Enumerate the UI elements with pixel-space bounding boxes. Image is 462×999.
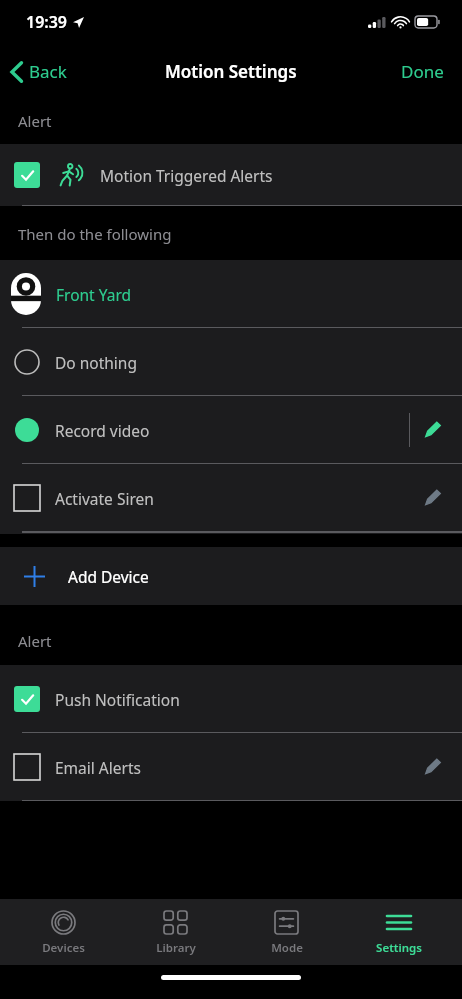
button[interactable]: Edit Activate Siren <box>410 476 454 520</box>
button[interactable]: Back <box>10 60 67 83</box>
button[interactable]: Activate Siren <box>0 464 462 532</box>
staticText: Mode <box>271 940 303 956</box>
button[interactable]: Mode <box>239 899 334 965</box>
button[interactable]: Add Device <box>0 547 462 605</box>
staticText: Library <box>156 940 196 956</box>
button[interactable]: Done <box>401 60 462 83</box>
button[interactable]: Push Notification <box>0 665 462 733</box>
staticText: Motion Triggered Alerts <box>100 165 273 186</box>
button[interactable]: Devices <box>16 899 111 965</box>
button[interactable]: Settings <box>351 899 446 965</box>
staticText: Devices <box>42 940 85 956</box>
button[interactable]: Do nothing <box>0 328 462 396</box>
staticText: Motion Settings <box>165 60 297 83</box>
staticText: Then do the following <box>18 224 172 244</box>
staticText: Back <box>29 60 67 83</box>
staticText: Add Device <box>68 566 149 587</box>
button[interactable]: Library <box>128 899 223 965</box>
button[interactable]: Record video <box>0 396 462 464</box>
staticText: Settings <box>376 940 422 956</box>
staticText: Record video <box>55 420 150 441</box>
button[interactable]: Email Alerts <box>0 733 462 801</box>
staticText: Alert <box>18 111 52 131</box>
staticText: Alert <box>18 631 52 651</box>
staticText: Front Yard <box>56 284 132 305</box>
button[interactable]: Edit Record video <box>410 408 454 452</box>
staticText: Activate Siren <box>55 488 154 509</box>
button[interactable]: Edit Email Alerts <box>410 745 454 789</box>
staticText: Email Alerts <box>55 757 141 778</box>
button[interactable]: Front Yard <box>0 260 462 328</box>
staticText: Push Notification <box>55 689 180 710</box>
staticText: Do nothing <box>55 352 137 373</box>
staticText: 19:39 <box>26 11 68 33</box>
button[interactable]: Motion Triggered Alerts <box>0 144 462 206</box>
